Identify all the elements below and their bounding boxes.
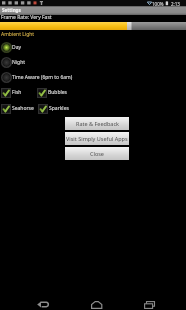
staticText: Close — [90, 150, 104, 157]
staticText: 2:13 — [171, 1, 180, 7]
staticText: Fish — [12, 89, 22, 96]
staticText: Rate & Feedback — [76, 120, 119, 127]
staticText: Seahorse — [12, 105, 34, 112]
button[interactable]: Time Aware (6pm to 6am) — [0, 71, 186, 83]
button[interactable]: Close — [65, 147, 129, 160]
button[interactable]: Fish — [1, 87, 11, 98]
button[interactable]: Recent apps — [138, 290, 160, 310]
button[interactable]: Rate & Feedback — [65, 117, 129, 130]
button[interactable]: Day — [0, 41, 186, 53]
staticText: Ambient Light — [1, 31, 35, 38]
staticText: Visit Simply Useful Apps — [66, 135, 128, 142]
staticText: 100% — [152, 1, 164, 7]
button[interactable]: Sparkles — [38, 103, 58, 114]
staticText: Frame Rate: Very Fast — [1, 14, 52, 21]
staticText: Bubbles — [48, 89, 67, 96]
button[interactable]: Visit Simply Useful Apps — [65, 132, 129, 145]
button[interactable]: Night — [0, 56, 186, 68]
button[interactable]: Bubbles — [37, 87, 56, 98]
staticText: Time Aware (6pm to 6am) — [12, 74, 73, 81]
staticText: Settings — [2, 7, 21, 13]
staticText: Day — [12, 44, 22, 51]
staticText: Night — [12, 59, 26, 66]
staticText: Sparkles — [49, 105, 69, 112]
button[interactable]: Home — [86, 290, 108, 310]
button[interactable] — [0, 22, 186, 30]
button[interactable]: Back — [28, 290, 50, 310]
button[interactable]: Seahorse — [1, 103, 23, 114]
